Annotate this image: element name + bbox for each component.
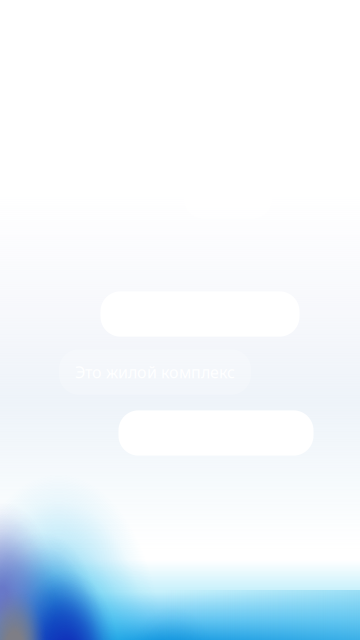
button[interactable]: Но это апартаменты! [118,410,313,456]
staticText: Это жилой комплекс [75,361,235,383]
